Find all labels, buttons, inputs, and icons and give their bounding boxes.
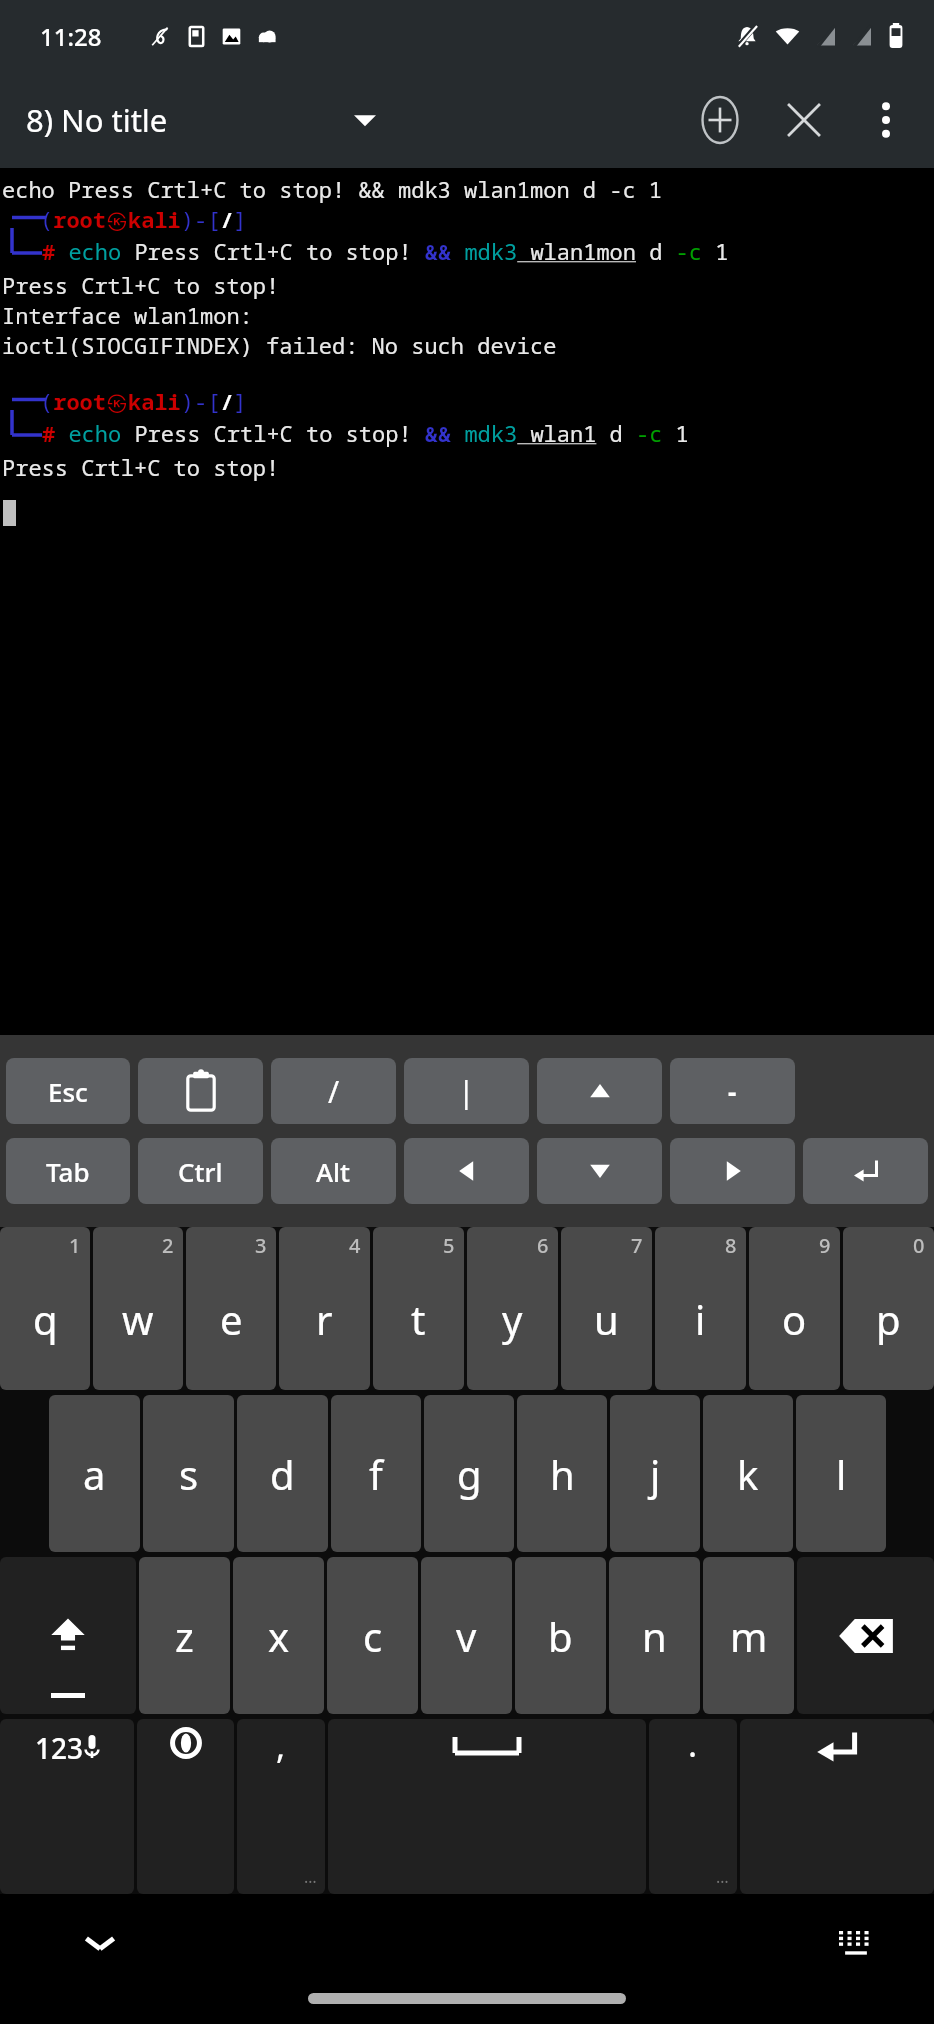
staticText: p xyxy=(876,1292,901,1346)
button[interactable]: 5 xyxy=(373,1227,464,1390)
button[interactable]: Close session xyxy=(762,78,846,162)
staticText: z xyxy=(175,1609,194,1663)
staticText: 5 xyxy=(443,1232,455,1259)
staticText: r xyxy=(316,1292,333,1346)
staticText: a xyxy=(83,1447,106,1501)
staticText: c xyxy=(363,1609,383,1663)
staticText: 8) No title xyxy=(26,99,168,141)
staticText: w xyxy=(122,1292,154,1346)
staticText: n xyxy=(642,1609,667,1663)
button[interactable]: . xyxy=(649,1719,737,1894)
staticText: 1 xyxy=(69,1232,81,1259)
button[interactable]: CLIP xyxy=(138,1058,263,1124)
button[interactable]: x xyxy=(233,1557,324,1714)
button[interactable]: DOWN xyxy=(537,1138,662,1204)
staticText: (root㉿kali)-[/] xyxy=(40,204,247,234)
button[interactable]: LEFT xyxy=(404,1138,529,1204)
button[interactable]: Ctrl xyxy=(138,1138,263,1204)
staticText: u xyxy=(594,1292,619,1346)
staticText: 6 xyxy=(537,1232,549,1259)
staticText: Esc xyxy=(48,1074,88,1109)
staticText: Tab xyxy=(46,1154,90,1189)
button[interactable]: ENT xyxy=(803,1138,928,1204)
button[interactable]: Emoji xyxy=(137,1719,234,1894)
staticText: o xyxy=(782,1292,807,1346)
staticText: # echo Press Crtl+C to stop! && mdk3 wla… xyxy=(42,418,689,448)
staticText: b xyxy=(548,1609,573,1663)
staticText: x xyxy=(268,1609,290,1663)
button[interactable]: 0 xyxy=(843,1227,934,1390)
button[interactable]: Alt xyxy=(271,1138,396,1204)
button[interactable]: j xyxy=(610,1395,700,1552)
button[interactable]: 1 xyxy=(0,1227,90,1390)
staticText: Ctrl xyxy=(178,1154,223,1189)
button[interactable]: v xyxy=(421,1557,512,1714)
button[interactable]: 8 xyxy=(655,1227,746,1390)
staticText: | xyxy=(458,1071,475,1112)
staticText: … xyxy=(304,1866,317,1888)
staticText: 7 xyxy=(631,1232,643,1259)
button[interactable]: 9 xyxy=(749,1227,840,1390)
staticText: i xyxy=(695,1292,706,1346)
button[interactable]: Hide keyboard xyxy=(60,1904,140,1984)
button[interactable]: Switch input method xyxy=(820,1908,892,1980)
staticText: 4 xyxy=(349,1232,361,1259)
staticText: 8 xyxy=(725,1232,737,1259)
button[interactable]: / xyxy=(271,1058,396,1124)
button[interactable]: z xyxy=(139,1557,230,1714)
staticText: s xyxy=(179,1447,199,1501)
button[interactable]: Tab xyxy=(6,1138,130,1204)
staticText: e xyxy=(220,1292,243,1346)
staticText: Alt xyxy=(316,1154,351,1189)
button[interactable]: 6 xyxy=(467,1227,558,1390)
button[interactable]: Select session xyxy=(330,85,400,155)
button[interactable]: UP xyxy=(537,1058,662,1124)
button[interactable]: f xyxy=(331,1395,421,1552)
staticText: 123 xyxy=(35,1729,84,1767)
button[interactable]: h xyxy=(517,1395,607,1552)
button[interactable]: l xyxy=(796,1395,886,1552)
staticText: q xyxy=(33,1292,58,1346)
button[interactable]: - xyxy=(670,1058,795,1124)
staticText: m xyxy=(730,1609,768,1663)
button[interactable]: Esc xyxy=(6,1058,130,1124)
staticText: / xyxy=(328,1071,340,1112)
staticText: - xyxy=(728,1074,737,1109)
staticText: f xyxy=(369,1447,383,1501)
button[interactable]: More options xyxy=(846,80,926,160)
button[interactable]: , xyxy=(237,1719,325,1894)
button[interactable]: RIGHT xyxy=(670,1138,795,1204)
button[interactable]: Enter xyxy=(740,1719,934,1894)
staticText: # echo Press Crtl+C to stop! && mdk3 wla… xyxy=(42,236,729,266)
button[interactable]: s xyxy=(143,1395,234,1552)
staticText: j xyxy=(650,1447,661,1501)
staticText: d xyxy=(270,1447,295,1501)
button[interactable]: n xyxy=(609,1557,700,1714)
button[interactable]: | xyxy=(404,1058,529,1124)
button[interactable]: Shift xyxy=(0,1557,136,1714)
button[interactable]: Symbols and voice input xyxy=(0,1719,134,1894)
staticText: 11:28 xyxy=(40,20,102,53)
button[interactable]: g xyxy=(424,1395,514,1552)
button[interactable]: Space xyxy=(328,1719,646,1894)
staticText: Press Crtl+C to stop! xyxy=(2,270,280,300)
button[interactable]: k xyxy=(703,1395,793,1552)
button[interactable]: a xyxy=(49,1395,140,1552)
button[interactable]: 3 xyxy=(186,1227,276,1390)
button[interactable]: 2 xyxy=(93,1227,183,1390)
staticText: Interface wlan1mon: xyxy=(2,300,253,330)
staticText: v xyxy=(456,1609,477,1663)
button[interactable]: b xyxy=(515,1557,606,1714)
staticText: 9 xyxy=(819,1232,831,1259)
button[interactable]: Backspace xyxy=(797,1557,934,1714)
button[interactable]: d xyxy=(237,1395,328,1552)
staticText: 2 xyxy=(162,1232,174,1259)
button[interactable]: 4 xyxy=(279,1227,370,1390)
staticText: l xyxy=(836,1447,847,1501)
button[interactable]: 7 xyxy=(561,1227,652,1390)
button[interactable]: c xyxy=(327,1557,418,1714)
staticText: . xyxy=(688,1721,698,1767)
button[interactable]: m xyxy=(703,1557,794,1714)
staticText: h xyxy=(550,1447,575,1501)
button[interactable]: New session xyxy=(678,78,762,162)
